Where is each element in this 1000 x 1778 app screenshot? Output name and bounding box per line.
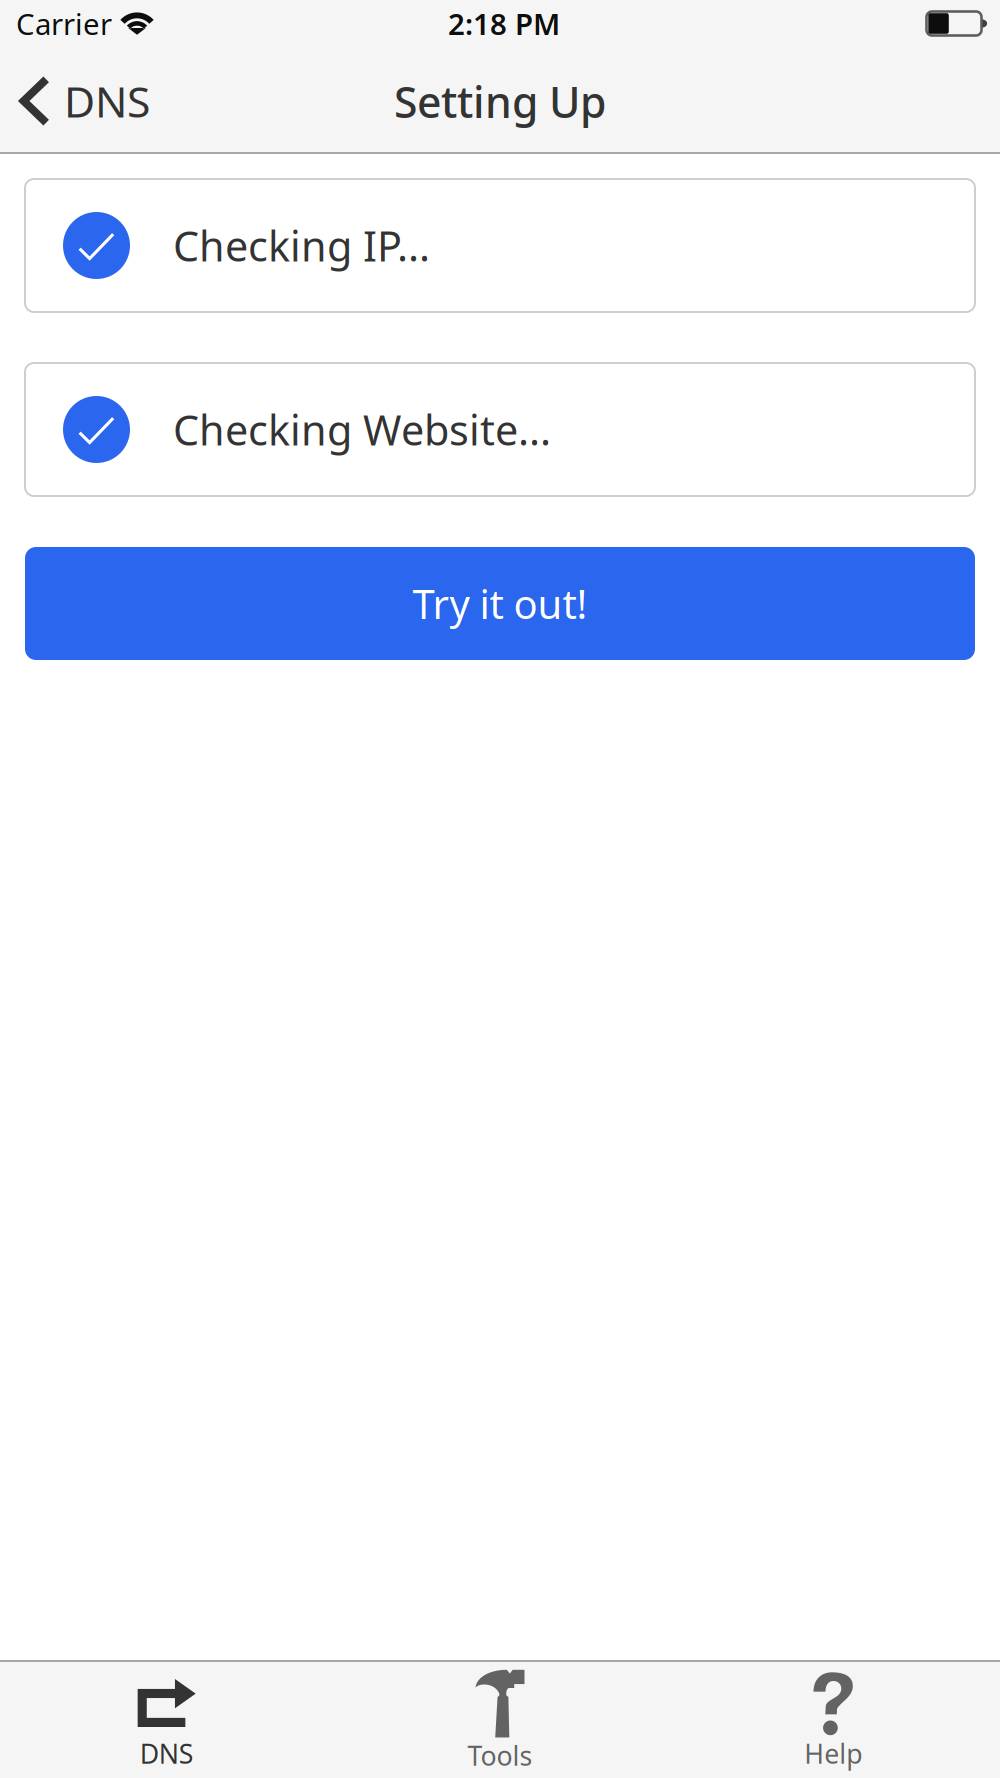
staticText: DNS	[64, 73, 150, 129]
staticText: Checking IP...	[173, 218, 430, 273]
staticText: 2:18 PM	[448, 4, 560, 43]
button[interactable]: Try it out!	[25, 547, 975, 660]
staticText: DNS	[140, 1736, 194, 1771]
staticText: Setting Up	[394, 73, 606, 130]
button[interactable]: Tools	[333, 1662, 667, 1778]
staticText: Checking Website...	[173, 402, 551, 457]
button[interactable]: DNS	[0, 1662, 333, 1778]
staticText: Try it out!	[412, 577, 587, 630]
staticText: Carrier	[16, 4, 112, 43]
staticText: Tools	[467, 1738, 532, 1773]
staticText: Help	[804, 1736, 862, 1771]
button[interactable]: Help	[667, 1662, 1000, 1778]
button[interactable]: DNS	[0, 47, 166, 152]
